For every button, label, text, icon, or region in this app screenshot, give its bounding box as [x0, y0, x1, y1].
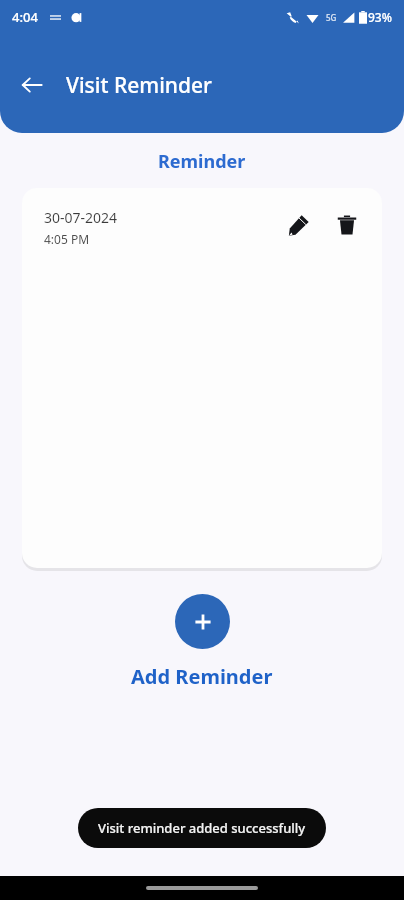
staticText: 4:04	[12, 8, 38, 26]
staticText: 5G	[326, 12, 337, 23]
button[interactable]: Add reminder	[175, 594, 230, 649]
staticText: 93%	[368, 9, 392, 25]
staticText: Reminder	[158, 149, 246, 174]
staticText: Add Reminder	[131, 663, 273, 690]
button[interactable]: Delete reminder	[330, 208, 364, 242]
button[interactable]: Back	[10, 63, 54, 107]
staticText: Visit Reminder	[66, 71, 212, 100]
staticText: 30-07-2024	[44, 208, 118, 227]
button[interactable]: Edit reminder	[282, 208, 316, 242]
button[interactable]: 30-07-2024	[22, 188, 382, 568]
staticText: Visit reminder added successfully	[98, 819, 306, 837]
staticText: 4:05 PM	[44, 231, 90, 247]
button[interactable]: Add Reminder	[131, 663, 273, 690]
